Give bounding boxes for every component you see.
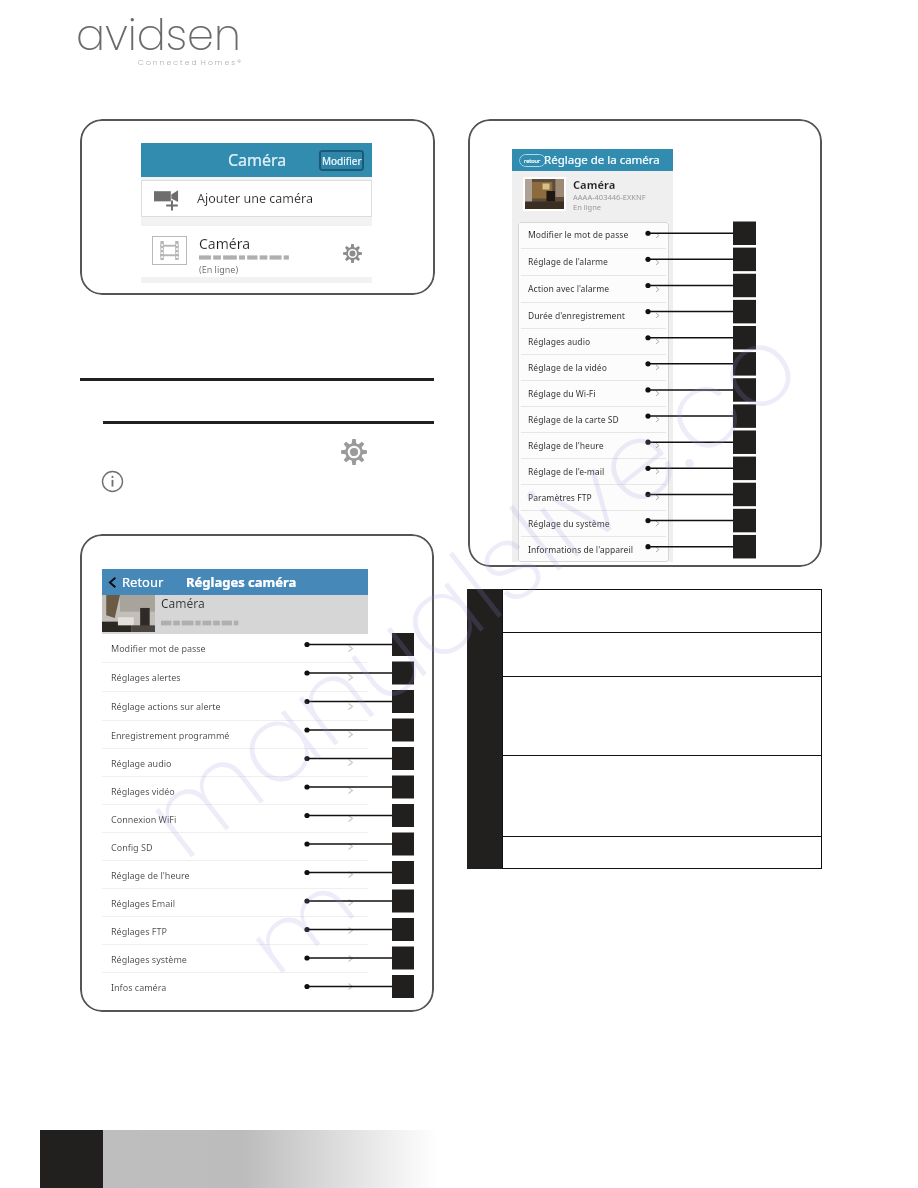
button[interactable]: Réglage du système bbox=[518, 511, 669, 536]
button[interactable]: Réglages Email bbox=[102, 889, 368, 916]
staticText: Réglage du Wi-Fi bbox=[528, 388, 596, 400]
staticText: Infos caméra bbox=[111, 981, 167, 993]
button[interactable]: Connexion WiFi bbox=[102, 805, 368, 832]
staticText: Réglage de l'e-mail bbox=[528, 466, 605, 478]
staticText: avidsen bbox=[76, 5, 241, 65]
button[interactable]: Réglage de la vidéo bbox=[518, 355, 669, 380]
staticText: Réglages FTP bbox=[111, 925, 167, 937]
staticText: Réglages système bbox=[111, 953, 187, 965]
staticText: Paramètres FTP bbox=[528, 492, 592, 504]
staticText: Retour bbox=[122, 573, 164, 591]
button[interactable]: Modifier bbox=[319, 150, 364, 171]
button[interactable]: Ajouter une caméra bbox=[141, 180, 372, 217]
button[interactable]: Réglages alertes bbox=[102, 663, 368, 691]
button[interactable]: Réglage du Wi-Fi bbox=[518, 381, 669, 406]
button[interactable]: Informations de l'appareil bbox=[518, 537, 669, 562]
staticText: (En ligne) bbox=[199, 263, 239, 275]
button[interactable]: Information bbox=[101, 470, 124, 493]
staticText: Modifier mot de passe bbox=[111, 642, 206, 654]
staticText: Modifier le mot de passe bbox=[528, 229, 629, 241]
staticText: Caméra bbox=[228, 149, 287, 171]
staticText: Modifier bbox=[322, 154, 362, 168]
button[interactable]: Action avec l'alarme bbox=[518, 276, 669, 302]
staticText: Réglage audio bbox=[111, 757, 172, 769]
staticText: En ligne bbox=[573, 202, 602, 212]
button[interactable]: Réglages vidéo bbox=[102, 777, 368, 804]
button[interactable]: Config SD bbox=[102, 833, 368, 860]
button[interactable]: Durée d'enregistrement bbox=[518, 303, 669, 328]
button[interactable]: Réglage de la carte SD bbox=[518, 407, 669, 432]
staticText: Réglage de la carte SD bbox=[528, 414, 619, 426]
staticText: Ajouter une caméra bbox=[197, 190, 313, 207]
staticText: Réglage de la caméra bbox=[544, 152, 660, 168]
button[interactable]: Camera settings bbox=[343, 244, 362, 263]
staticText: Réglages audio bbox=[528, 336, 591, 348]
button[interactable]: Settings bbox=[341, 439, 367, 465]
button[interactable]: Réglage de l'e-mail bbox=[518, 459, 669, 484]
staticText: AAAA-403446-EXKNF bbox=[573, 192, 646, 202]
staticText: Réglage actions sur alerte bbox=[111, 700, 221, 712]
staticText: Enregistrement programmé bbox=[111, 729, 230, 741]
button[interactable]: Réglage de l'alarme bbox=[518, 249, 669, 275]
staticText: Durée d'enregistrement bbox=[528, 310, 625, 322]
staticText: Informations de l'appareil bbox=[528, 544, 633, 556]
staticText: Config SD bbox=[111, 841, 153, 853]
button[interactable]: Infos caméra bbox=[102, 973, 368, 1000]
button[interactable]: Modifier mot de passe bbox=[102, 634, 368, 662]
button[interactable]: Réglage de l'heure bbox=[102, 861, 368, 888]
button[interactable]: Modifier le mot de passe bbox=[518, 222, 669, 248]
staticText: Réglage de l'heure bbox=[111, 869, 190, 881]
button[interactable]: Paramètres FTP bbox=[518, 485, 669, 510]
staticText: Caméra bbox=[573, 177, 616, 192]
button[interactable]: Réglage audio bbox=[102, 749, 368, 776]
staticText: retour bbox=[524, 157, 541, 164]
button[interactable]: Réglage actions sur alerte bbox=[102, 692, 368, 720]
button[interactable]: retour bbox=[519, 154, 546, 167]
button[interactable]: Réglage de l'heure bbox=[518, 433, 669, 458]
staticText: Réglages caméra bbox=[186, 573, 297, 591]
staticText: Connexion WiFi bbox=[111, 813, 177, 825]
staticText: C o n n e c t e d H o m e s ® bbox=[138, 57, 241, 67]
button[interactable]: Réglages système bbox=[102, 945, 368, 972]
staticText: Caméra bbox=[199, 234, 251, 253]
staticText: Réglage de la vidéo bbox=[528, 362, 607, 374]
staticText: Réglages alertes bbox=[111, 671, 181, 683]
staticText: Réglage du système bbox=[528, 518, 610, 530]
staticText: Caméra bbox=[161, 595, 205, 611]
staticText: Réglages Email bbox=[111, 897, 175, 909]
button[interactable]: Réglages FTP bbox=[102, 917, 368, 944]
staticText: Réglage de l'heure bbox=[528, 440, 604, 452]
staticText: Réglages vidéo bbox=[111, 785, 175, 797]
button[interactable]: Caméra bbox=[141, 226, 372, 277]
staticText: Action avec l'alarme bbox=[528, 283, 610, 295]
button[interactable]: Enregistrement programmé bbox=[102, 721, 368, 748]
staticText: manualslive.com bbox=[115, 281, 905, 979]
button[interactable]: Retour bbox=[106, 573, 164, 591]
staticText: Réglage de l'alarme bbox=[528, 256, 608, 268]
button[interactable]: Réglages audio bbox=[518, 329, 669, 354]
